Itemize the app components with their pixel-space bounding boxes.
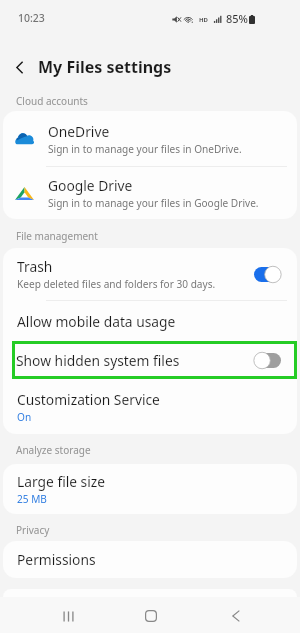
staticText: 25 MB [17,492,47,506]
button[interactable]: Back [208,598,264,633]
button[interactable]: Customization Service [3,379,297,434]
staticText: Sign in to manage your files in OneDrive… [48,142,242,156]
button[interactable]: Home [123,598,179,633]
button[interactable]: Toggle on [254,267,280,282]
button[interactable]: OneDrive [3,111,297,166]
button[interactable]: Navigate up [0,46,38,88]
staticText: Permissions [17,550,96,569]
button[interactable]: Allow mobile data usage [3,301,297,341]
button[interactable]: Google Drive [3,167,297,219]
staticText: Customization Service [17,390,160,409]
staticText: Privacy [16,523,50,537]
staticText: Large file size [17,472,106,491]
staticText: Keep deleted files and folders for 30 da… [17,277,216,291]
button[interactable]: Large file size [3,464,297,514]
staticText: Allow mobile data usage [17,312,176,331]
button[interactable]: Show hidden system files [15,344,294,376]
button[interactable]: Trash [3,248,297,300]
staticText: OneDrive [48,122,110,141]
staticText: Trash [17,257,53,276]
staticText: HD [199,16,208,24]
staticText: Sign in to manage your files in Google D… [48,196,259,210]
staticText: Show hidden system files [16,351,255,370]
button[interactable]: Toggle off [255,353,281,368]
staticText: Cloud accounts [16,94,88,108]
staticText: My Files settings [38,56,172,78]
staticText: Analyze storage [16,443,91,457]
staticText: 85% [226,11,248,26]
staticText: Google Drive [48,176,133,195]
staticText: On [17,410,32,424]
button[interactable]: Permissions [3,541,297,578]
staticText: File management [16,229,98,243]
button[interactable]: Recent apps [40,598,96,633]
staticText: 10:23 [18,11,45,25]
